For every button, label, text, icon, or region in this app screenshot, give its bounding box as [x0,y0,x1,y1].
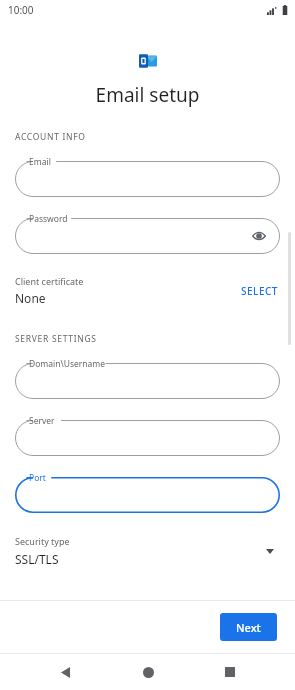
staticText: Client certificate [15,275,84,287]
button[interactable]: SELECT [239,280,280,302]
staticText: Server [29,415,55,427]
button[interactable]: Next [220,613,277,641]
staticText: ACCOUNT INFO [15,131,86,143]
button[interactable]: Show password [248,225,270,247]
staticText: Port [29,472,46,484]
staticText: None [15,290,46,306]
button[interactable]: Email [15,161,280,197]
button[interactable]: Security type [15,535,280,567]
staticText: SSL/TLS [15,551,59,567]
staticText: SELECT [241,284,278,298]
staticText: Password [29,213,68,225]
staticText: Email setup [15,82,280,108]
staticText: 10:00 [8,3,34,17]
staticText: Domain\Username [29,358,106,370]
button[interactable]: Port [15,477,280,513]
staticText: Email [29,156,51,168]
staticText: Next [236,620,261,635]
button[interactable]: Back [47,654,83,690]
button[interactable]: Domain\Username [15,363,280,399]
button[interactable]: Client certificate [15,275,280,306]
staticText: SERVER SETTINGS [15,333,97,345]
button[interactable]: Server [15,420,280,456]
staticText: Security type [15,535,70,547]
button[interactable]: Recent apps [212,654,248,690]
button[interactable]: Home [130,654,166,690]
button[interactable]: Open security type menu [260,541,280,561]
button[interactable]: Password [15,218,280,254]
